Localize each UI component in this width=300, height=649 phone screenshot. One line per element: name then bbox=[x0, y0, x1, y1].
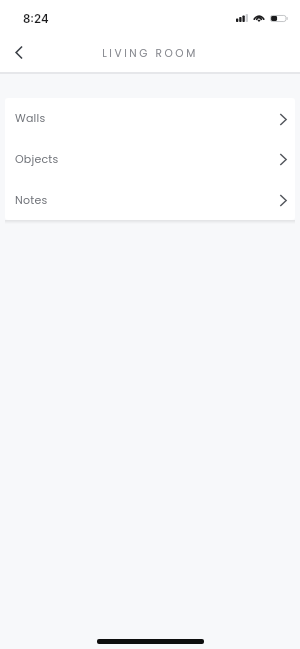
staticText: Objects bbox=[15, 151, 59, 166]
staticText: 8:24 bbox=[23, 12, 49, 26]
staticText: LIVING ROOM bbox=[102, 46, 198, 61]
button[interactable]: Notes bbox=[5, 179, 295, 220]
button[interactable]: Back bbox=[2, 36, 36, 68]
button[interactable]: Walls bbox=[5, 98, 295, 138]
staticText: Walls bbox=[15, 110, 46, 125]
button[interactable]: Objects bbox=[5, 138, 295, 179]
staticText: Notes bbox=[15, 192, 48, 207]
